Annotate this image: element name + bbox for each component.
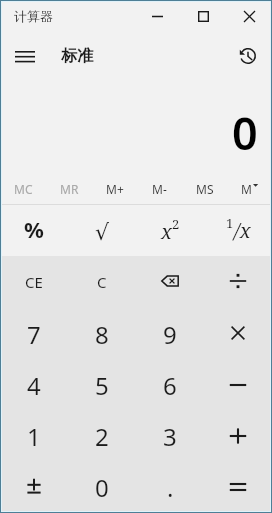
button[interactable]: 8 — [68, 308, 136, 360]
staticText: MS — [196, 181, 214, 197]
button[interactable]: Menu — [0, 32, 50, 80]
staticText: M- — [152, 181, 167, 197]
button[interactable]: 5 — [68, 360, 136, 411]
button[interactable]: . — [136, 462, 204, 513]
button[interactable]: Plus minus — [0, 462, 68, 513]
button[interactable]: History — [228, 32, 272, 80]
staticText: 9 — [163, 318, 177, 351]
button[interactable]: Divide — [204, 256, 272, 308]
staticText: M+ — [106, 181, 124, 197]
button[interactable]: 7 — [0, 308, 68, 360]
button[interactable]: CE — [0, 256, 68, 308]
staticText: 5 — [95, 369, 109, 402]
staticText: C — [97, 272, 107, 292]
staticText: 3 — [163, 420, 177, 453]
staticText: √ — [95, 220, 110, 246]
button[interactable]: Memory options — [227, 175, 272, 203]
button[interactable]: Backspace — [136, 256, 204, 308]
button[interactable]: Minimize — [134, 0, 180, 32]
staticText: 7 — [27, 318, 41, 351]
staticText: 2 — [172, 215, 180, 233]
button[interactable]: Percent — [0, 205, 68, 256]
staticText: 计算器 — [14, 8, 53, 24]
staticText: CE — [25, 272, 43, 292]
staticText: 4 — [27, 369, 41, 402]
button[interactable]: Reciprocal — [204, 205, 272, 256]
staticText: 2 — [95, 420, 109, 453]
staticText: 6 — [163, 369, 177, 402]
button[interactable]: Plus — [204, 411, 272, 462]
staticText: MR — [60, 181, 79, 197]
button[interactable]: Multiply — [204, 308, 272, 360]
button[interactable]: M- — [137, 175, 182, 203]
staticText: % — [24, 214, 44, 244]
staticText: /x — [234, 217, 251, 244]
button[interactable]: 0 — [68, 462, 136, 513]
button[interactable]: Equals — [204, 462, 272, 513]
button[interactable]: 4 — [0, 360, 68, 411]
staticText: 1 — [27, 420, 41, 453]
button[interactable]: MS — [182, 175, 227, 203]
button[interactable]: M+ — [92, 175, 137, 203]
button[interactable]: Close — [226, 0, 272, 32]
staticText: 标准 — [61, 46, 93, 66]
button[interactable]: MC — [0, 175, 46, 203]
staticText: 0 — [232, 102, 258, 163]
staticText: x — [161, 218, 172, 245]
staticText: 8 — [95, 318, 109, 351]
staticText: MC — [14, 181, 33, 197]
button[interactable]: Square — [136, 205, 204, 256]
button[interactable]: 1 — [0, 411, 68, 462]
button[interactable]: 3 — [136, 411, 204, 462]
staticText: M — [241, 181, 252, 197]
staticText: 1 — [226, 214, 234, 232]
button[interactable]: 2 — [68, 411, 136, 462]
button[interactable]: C — [68, 256, 136, 308]
button[interactable]: Minus — [204, 360, 272, 411]
button[interactable]: MR — [46, 175, 92, 203]
staticText: . — [167, 471, 174, 504]
button[interactable]: Square root — [68, 205, 136, 256]
button[interactable]: 9 — [136, 308, 204, 360]
button[interactable]: Maximize — [180, 0, 226, 32]
button[interactable]: 6 — [136, 360, 204, 411]
staticText: 0 — [95, 471, 109, 504]
